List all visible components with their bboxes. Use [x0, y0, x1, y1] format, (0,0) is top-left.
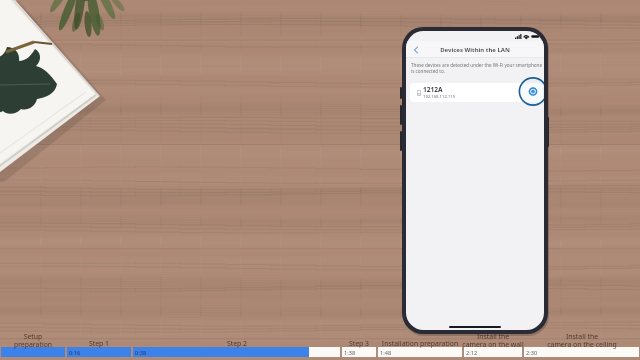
button[interactable]: Installation preparation — [350, 339, 490, 348]
button[interactable]: Step 1 — [29, 339, 169, 348]
staticText: Setup preparation — [0, 332, 103, 349]
staticText: 0:38 — [135, 349, 147, 357]
staticText: These devices are detected under the Wi-… — [411, 62, 543, 75]
staticText: Step 1 — [29, 339, 169, 348]
staticText: Installation preparation — [350, 339, 490, 348]
button[interactable]: 1212A — [410, 83, 543, 102]
staticText: Devices Within the LAN — [440, 46, 510, 54]
staticText: Install the camera on the ceiling — [512, 332, 640, 349]
staticText: 1:38 — [344, 349, 356, 357]
staticText: 2:12 — [466, 349, 478, 357]
staticText: 2:30 — [526, 349, 538, 357]
button[interactable]: Install the camera on the ceiling — [512, 332, 640, 349]
staticText: 1212A — [423, 85, 443, 94]
staticText: 1:48 — [380, 349, 392, 357]
staticText: Step 2 — [167, 339, 307, 348]
staticText: 0:16 — [69, 349, 81, 357]
button[interactable]: Step 2 — [167, 339, 307, 348]
staticText: 192.168.112.115 — [423, 94, 456, 100]
staticText: Step 3 — [289, 339, 429, 348]
button[interactable]: Step 3 — [289, 339, 429, 348]
button[interactable]: Setup preparation — [0, 332, 103, 349]
button[interactable]: Back — [411, 45, 421, 55]
button[interactable]: Install the camera on the wall — [423, 332, 563, 349]
staticText: Install the camera on the wall — [423, 332, 563, 349]
